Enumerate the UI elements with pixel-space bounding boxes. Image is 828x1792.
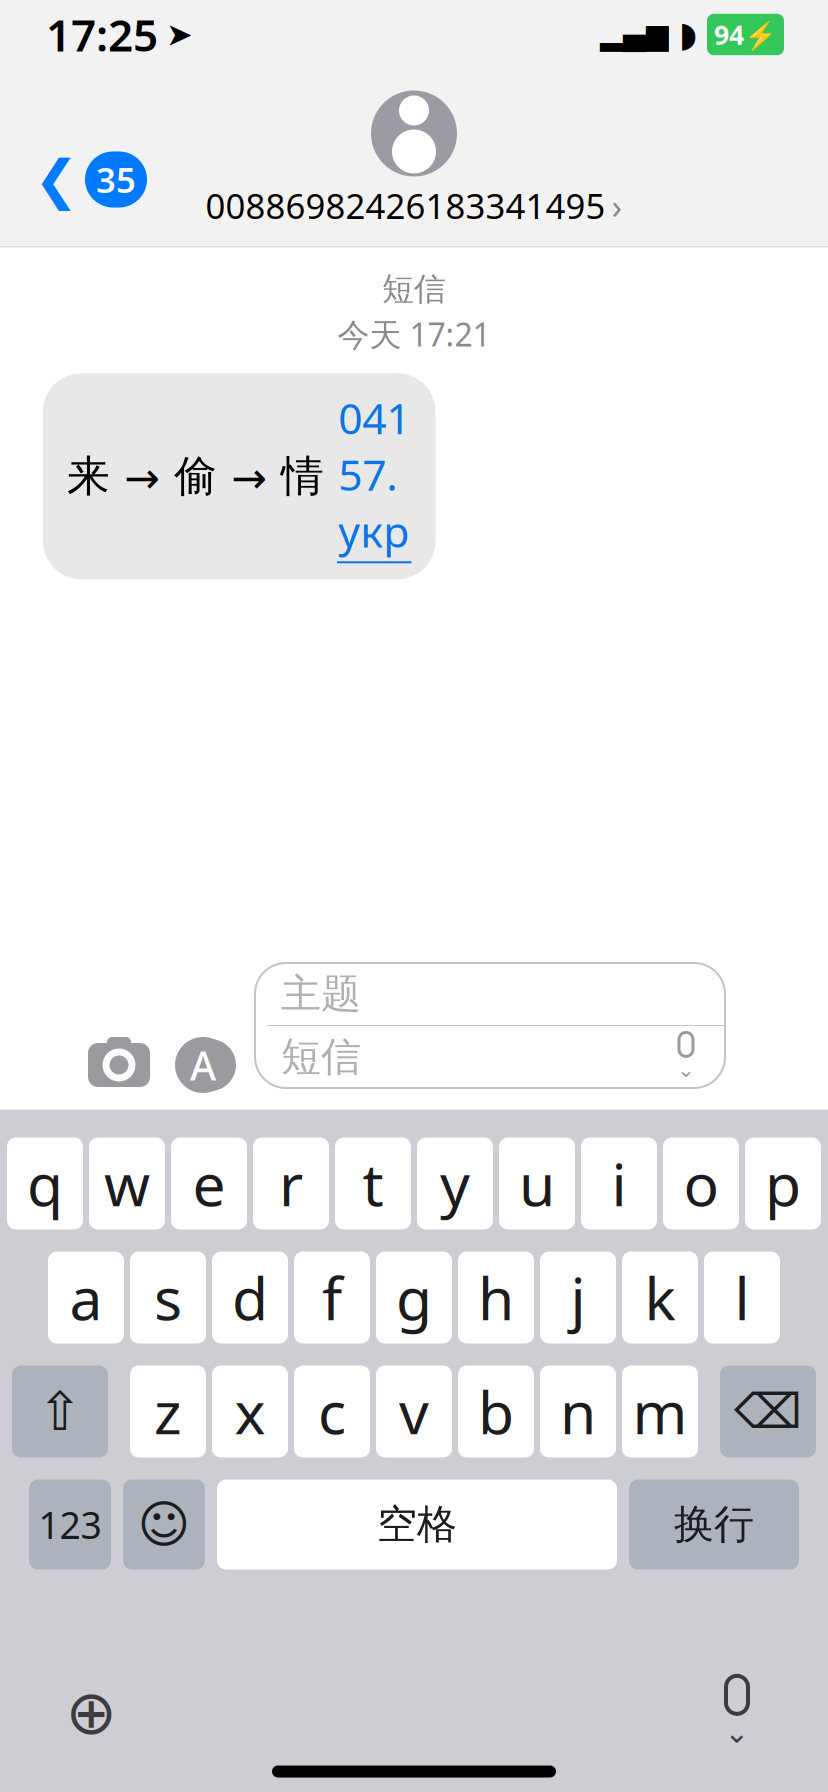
staticText: ▂▄▆ [600,18,669,51]
staticText: q [27,1144,63,1222]
button[interactable]: n [540,1365,616,1457]
staticText: 今天 17:21 [337,313,490,355]
button[interactable]: m [622,1365,698,1457]
button[interactable]: Dictation [702,1677,772,1747]
staticText: g [396,1258,432,1336]
button[interactable]: i [581,1137,657,1229]
staticText: z [154,1372,182,1450]
staticText: 35 [96,156,136,202]
button[interactable]: 123 [29,1479,111,1569]
staticText: r [279,1144,303,1222]
staticText: 00886982426183341495 [205,182,605,228]
staticText: j [570,1258,585,1336]
staticText: › [611,182,622,228]
button[interactable]: k [622,1251,698,1343]
button[interactable]: o [663,1137,739,1229]
button[interactable]: Emoji [123,1479,205,1569]
staticText: 来 → 偷 → 情 [67,450,337,502]
staticText: n [560,1372,596,1450]
button[interactable]: d [212,1251,288,1343]
button[interactable]: Delete [720,1365,816,1457]
button[interactable]: Apps [165,1036,255,1094]
button[interactable]: q [7,1137,83,1229]
staticText: b [478,1372,514,1450]
staticText: 主题 [281,969,361,1018]
staticText: 空格 [377,1500,457,1549]
button[interactable]: z [130,1365,206,1457]
staticText: ☺ [137,1496,190,1553]
button[interactable]: s [130,1251,206,1343]
staticText: 换行 [674,1500,754,1549]
staticText: 短信 [281,1032,361,1081]
button[interactable]: g [376,1251,452,1343]
staticText: y [440,1144,470,1222]
staticText: 17:25 [46,5,158,64]
button[interactable]: 空格 [217,1479,617,1569]
button[interactable]: 换行 [629,1479,799,1569]
staticText: x [234,1372,265,1450]
staticText: 04157.укр [338,389,410,559]
button[interactable]: y [417,1137,493,1229]
button[interactable]: a [48,1251,124,1343]
staticText: v [399,1372,429,1450]
button[interactable]: u [499,1137,575,1229]
staticText: A [190,1038,216,1091]
button[interactable]: Camera [73,1036,165,1094]
staticText: u [519,1144,555,1222]
button[interactable]: Back, 35 unread [14,135,167,224]
button[interactable]: t [335,1137,411,1229]
staticText: c [318,1372,346,1450]
staticText: d [232,1258,268,1336]
staticText: k [644,1258,675,1336]
staticText: ⌄ [677,1057,695,1082]
button[interactable]: c [294,1365,370,1457]
staticText: a [69,1258,102,1336]
staticText: 123 [38,1500,101,1549]
staticText: t [362,1144,383,1222]
staticText: f [322,1258,342,1336]
staticText: ◗ [679,15,697,54]
button[interactable]: w [89,1137,165,1229]
staticText: 94⚡ [714,17,777,52]
staticText: ❮ [34,149,79,210]
staticText: ➤ [166,16,193,53]
staticText: h [478,1258,514,1336]
button[interactable]: e [171,1137,247,1229]
staticText: e [192,1144,225,1222]
button[interactable]: l [704,1251,780,1343]
staticText: w [104,1144,150,1222]
button[interactable]: f [294,1251,370,1343]
staticText: i [611,1144,626,1222]
button[interactable]: r [253,1137,329,1229]
staticText: s [154,1258,182,1336]
button[interactable]: b [458,1365,534,1457]
staticText: ⌫ [734,1384,802,1439]
button[interactable]: Switch keyboard [56,1677,126,1747]
staticText: p [765,1144,801,1222]
staticText: m [632,1372,687,1450]
button[interactable]: x [212,1365,288,1457]
button[interactable]: h [458,1251,534,1343]
staticText: ⇧ [37,1381,82,1442]
button[interactable]: Shift [12,1365,108,1457]
staticText: ⌄ [724,1716,749,1749]
button[interactable]: j [540,1251,616,1343]
staticText: ⊕ [65,1678,116,1747]
button[interactable]: p [745,1137,821,1229]
staticText: l [734,1258,749,1336]
staticText: o [683,1144,718,1222]
button[interactable]: v [376,1365,452,1457]
staticText: 短信 [382,269,446,309]
